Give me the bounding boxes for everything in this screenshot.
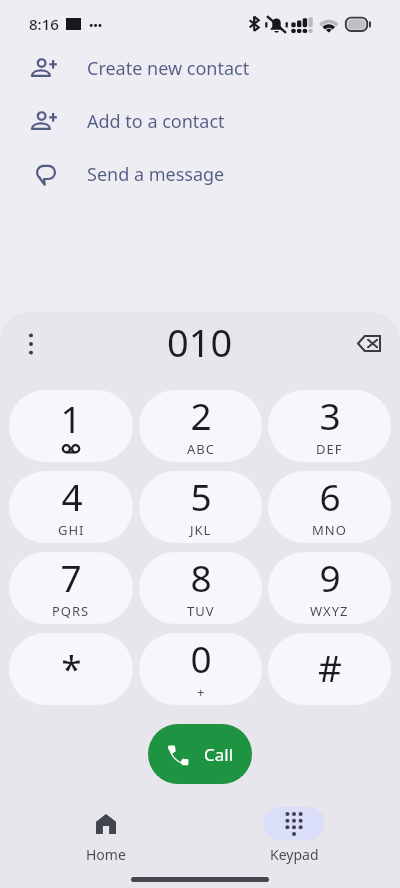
staticText: Call: [204, 743, 234, 766]
staticText: +: [197, 683, 206, 701]
button[interactable]: Send a message: [0, 148, 400, 201]
staticText: ABC: [187, 440, 215, 458]
staticText: #: [318, 642, 342, 692]
staticText: MNO: [312, 521, 347, 539]
staticText: 0: [190, 633, 212, 683]
staticText: 3: [319, 390, 341, 440]
staticText: PQRS: [52, 602, 90, 620]
button[interactable]: 8: [139, 552, 262, 624]
staticText: 2: [190, 390, 212, 440]
staticText: 010: [167, 316, 233, 368]
button[interactable]: 7: [9, 552, 133, 624]
staticText: 6: [319, 471, 341, 521]
button[interactable]: 6: [268, 471, 391, 543]
button[interactable]: Add to a contact: [0, 95, 400, 148]
button[interactable]: Home: [12, 807, 200, 864]
staticText: 8: [190, 552, 212, 602]
button[interactable]: Call: [148, 724, 252, 784]
staticText: Keypad: [270, 845, 319, 864]
button[interactable]: Keypad: [200, 807, 388, 864]
staticText: JKL: [190, 521, 212, 539]
staticText: TUV: [187, 602, 215, 620]
staticText: Send a message: [87, 162, 225, 187]
button[interactable]: Backspace: [347, 321, 391, 365]
staticText: Create new contact: [87, 56, 250, 81]
staticText: 8:16: [29, 14, 59, 34]
staticText: *: [61, 642, 82, 692]
staticText: 7: [60, 552, 82, 602]
button[interactable]: 3: [268, 390, 391, 462]
staticText: WXYZ: [310, 602, 349, 620]
staticText: 1: [60, 393, 82, 443]
button[interactable]: 2: [139, 390, 262, 462]
staticText: Home: [86, 845, 126, 864]
staticText: GHI: [58, 521, 85, 539]
staticText: DEF: [316, 440, 343, 458]
button[interactable]: More options: [11, 324, 51, 364]
button[interactable]: 1: [9, 390, 133, 462]
button[interactable]: Create new contact: [0, 42, 400, 95]
button[interactable]: 5: [139, 471, 262, 543]
button[interactable]: 9: [268, 552, 391, 624]
button[interactable]: #: [268, 633, 391, 705]
button[interactable]: 4: [9, 471, 133, 543]
staticText: 4: [61, 471, 83, 521]
button[interactable]: *: [9, 633, 133, 705]
button[interactable]: 0: [139, 633, 262, 705]
staticText: 9: [319, 552, 341, 602]
staticText: Add to a contact: [87, 109, 225, 134]
staticText: 5: [190, 471, 212, 521]
